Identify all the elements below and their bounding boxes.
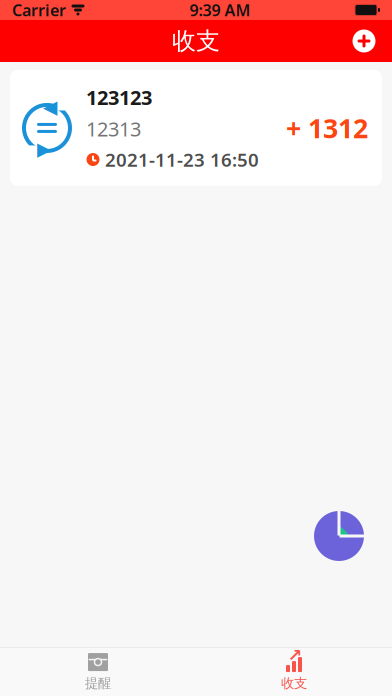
staticText: ↗ [287, 645, 302, 665]
button[interactable]: Add [342, 20, 386, 62]
button[interactable]: ↗ [196, 648, 392, 696]
staticText: ◀ [43, 96, 57, 118]
staticText: 12313 [86, 116, 141, 142]
staticText: + 1312 [286, 110, 368, 146]
button[interactable]: 提醒 [0, 648, 196, 696]
staticText: 9:39 AM [189, 0, 250, 21]
staticText: 收支 [172, 26, 220, 56]
staticText: Carrier [12, 0, 66, 21]
staticText: ▶ [37, 138, 51, 160]
staticText: 2021-11-23 16:50 [105, 147, 259, 172]
button[interactable]: ◀ [10, 70, 382, 186]
staticText: 提醒 [85, 675, 111, 691]
staticText: 123123 [86, 84, 152, 111]
staticText: 收支 [281, 675, 307, 691]
